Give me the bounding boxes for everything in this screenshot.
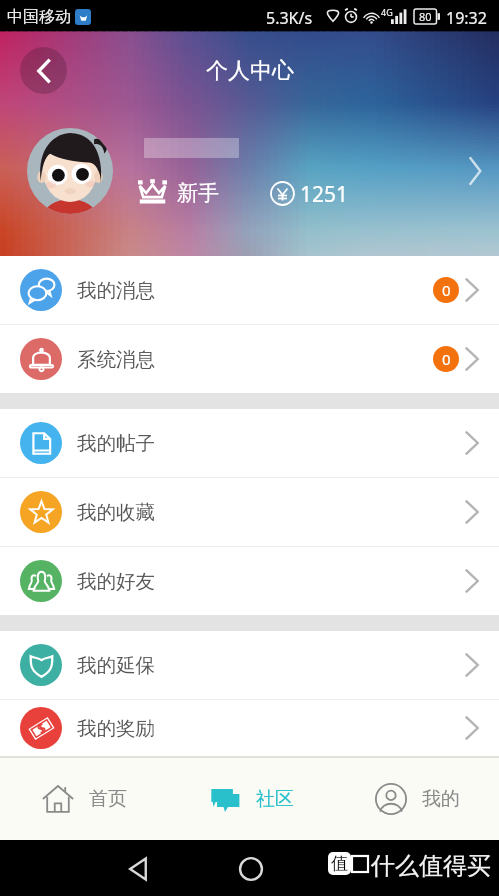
staticText: 我的收藏 xyxy=(77,500,155,525)
staticText: 什么值得买 xyxy=(371,851,491,881)
button[interactable]: 我的收藏 xyxy=(0,478,499,546)
staticText: 0 xyxy=(442,349,451,369)
button[interactable]: 我的消息 xyxy=(0,256,499,324)
staticText: 5.3K/s xyxy=(266,7,313,29)
button[interactable]: 我的延保 xyxy=(0,631,499,699)
button[interactable]: 系统消息 xyxy=(0,325,499,393)
staticText: 中国移动 xyxy=(7,7,71,27)
button[interactable]: Home xyxy=(238,856,264,882)
staticText: 我的 xyxy=(422,787,460,811)
button[interactable]: 新手 xyxy=(0,127,499,237)
staticText: 新手 xyxy=(177,180,219,206)
button[interactable]: Back xyxy=(126,856,152,882)
button[interactable]: Back xyxy=(20,47,67,94)
button[interactable]: 我的帖子 xyxy=(0,409,499,477)
staticText: 我的帖子 xyxy=(77,431,155,456)
button[interactable]: 首页 xyxy=(0,758,167,840)
staticText: 我的延保 xyxy=(77,653,155,678)
button[interactable]: 我的 xyxy=(333,758,499,840)
staticText: 1251 xyxy=(300,180,349,209)
staticText: 我的好友 xyxy=(77,569,155,594)
staticText: 首页 xyxy=(89,787,127,811)
staticText: 19:32 xyxy=(446,7,487,29)
button[interactable]: 社区 xyxy=(167,758,333,840)
staticText: 社区 xyxy=(256,787,294,811)
staticText: 0 xyxy=(442,280,451,300)
staticText: 我的消息 xyxy=(77,278,155,303)
staticText: 80 xyxy=(419,9,432,24)
staticText: 个人中心 xyxy=(206,57,294,85)
staticText: 值 xyxy=(331,853,348,874)
staticText: 系统消息 xyxy=(77,347,155,372)
button[interactable]: 我的奖励 xyxy=(0,700,499,756)
button[interactable]: 我的好友 xyxy=(0,547,499,615)
staticText: 4G xyxy=(381,6,393,18)
staticText: 我的奖励 xyxy=(77,716,155,741)
